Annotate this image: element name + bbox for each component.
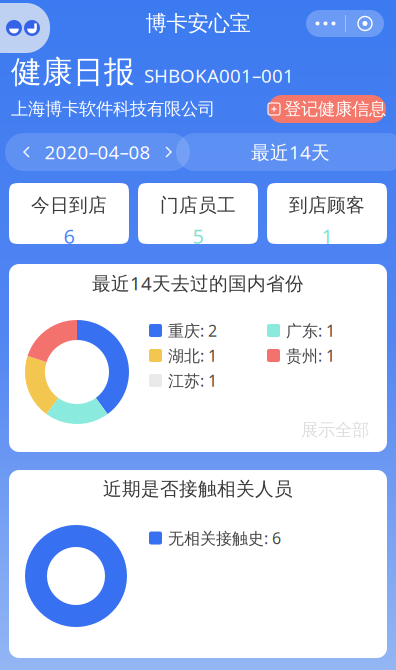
button[interactable]: More bbox=[306, 10, 345, 37]
staticText: 上海博卡软件科技有限公司 bbox=[11, 98, 215, 120]
staticText: 广东: 1 bbox=[286, 320, 335, 341]
button[interactable]: 登记健康信息 bbox=[268, 95, 386, 123]
button[interactable]: 2020–04–08 bbox=[5, 133, 190, 171]
staticText: 最近14天 bbox=[251, 140, 330, 164]
staticText: 重庆: 2 bbox=[168, 320, 217, 341]
button[interactable]: 今日到店 bbox=[9, 183, 129, 244]
staticText: 无相关接触史: 6 bbox=[168, 527, 281, 549]
staticText: 2020–04–08 bbox=[44, 140, 150, 164]
staticText: 贵州: 1 bbox=[286, 345, 335, 366]
button[interactable]: Close bbox=[346, 10, 384, 37]
staticText: SHBOKA001–001 bbox=[144, 63, 294, 88]
button[interactable]: 门店员工 bbox=[138, 183, 258, 244]
staticText: 健康日报 bbox=[11, 53, 135, 91]
staticText: 近期是否接触相关人员 bbox=[103, 477, 293, 500]
staticText: 最近14天去过的国内省份 bbox=[92, 271, 304, 295]
staticText: 展示全部 bbox=[301, 419, 369, 441]
staticText: 江苏: 1 bbox=[168, 370, 217, 391]
staticText: 5 bbox=[192, 223, 203, 249]
button[interactable]: 展示全部 bbox=[301, 419, 369, 441]
button[interactable]: 到店顾客 bbox=[267, 183, 387, 244]
staticText: 1 bbox=[321, 223, 332, 249]
button[interactable]: 最近14天 bbox=[190, 133, 391, 171]
staticText: 6 bbox=[63, 223, 74, 249]
staticText: 到店顾客 bbox=[289, 194, 365, 217]
staticText: 登记健康信息 bbox=[284, 98, 386, 120]
staticText: 今日到店 bbox=[31, 194, 107, 217]
staticText: 博卡安心宝 bbox=[145, 10, 250, 37]
staticText: 门店员工 bbox=[160, 194, 236, 217]
staticText: 湖北: 1 bbox=[168, 345, 217, 366]
